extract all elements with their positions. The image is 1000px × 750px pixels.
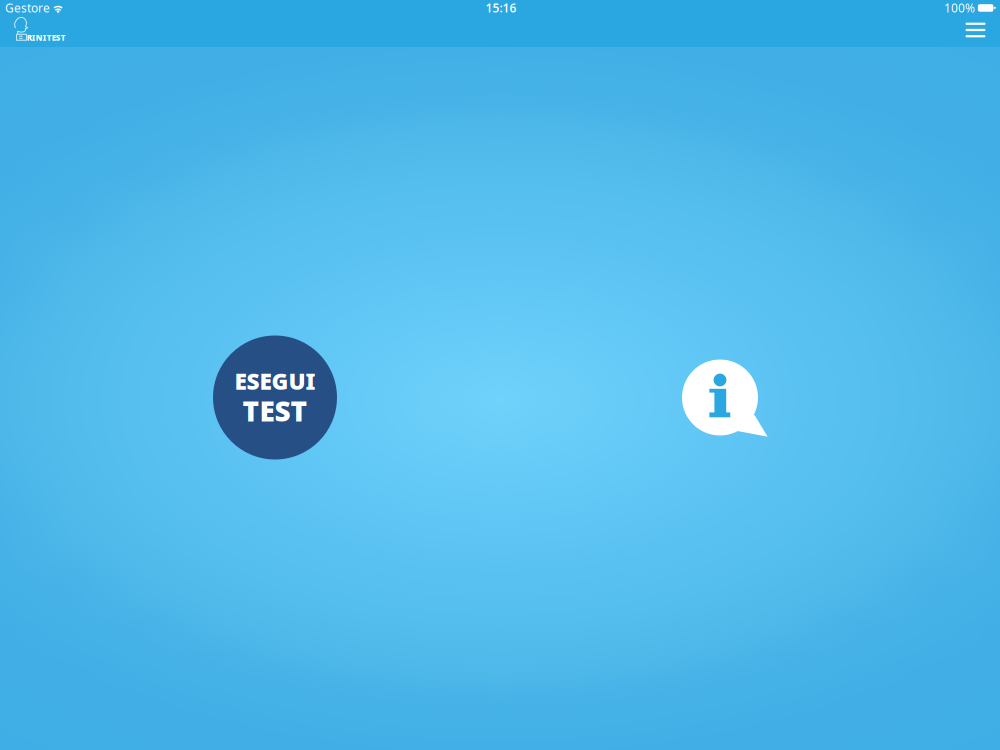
staticText: TEST <box>242 392 307 429</box>
button[interactable]: Informazioni <box>682 359 768 437</box>
staticText: 15:16 <box>485 0 516 16</box>
button[interactable]: Menu <box>959 17 991 43</box>
staticText: RINITEST <box>27 32 66 43</box>
button[interactable]: ESEGUI <box>213 335 337 460</box>
staticText: ESEGUI <box>234 366 315 396</box>
staticText: 100% <box>944 0 975 16</box>
staticText: Gestore <box>5 0 50 16</box>
